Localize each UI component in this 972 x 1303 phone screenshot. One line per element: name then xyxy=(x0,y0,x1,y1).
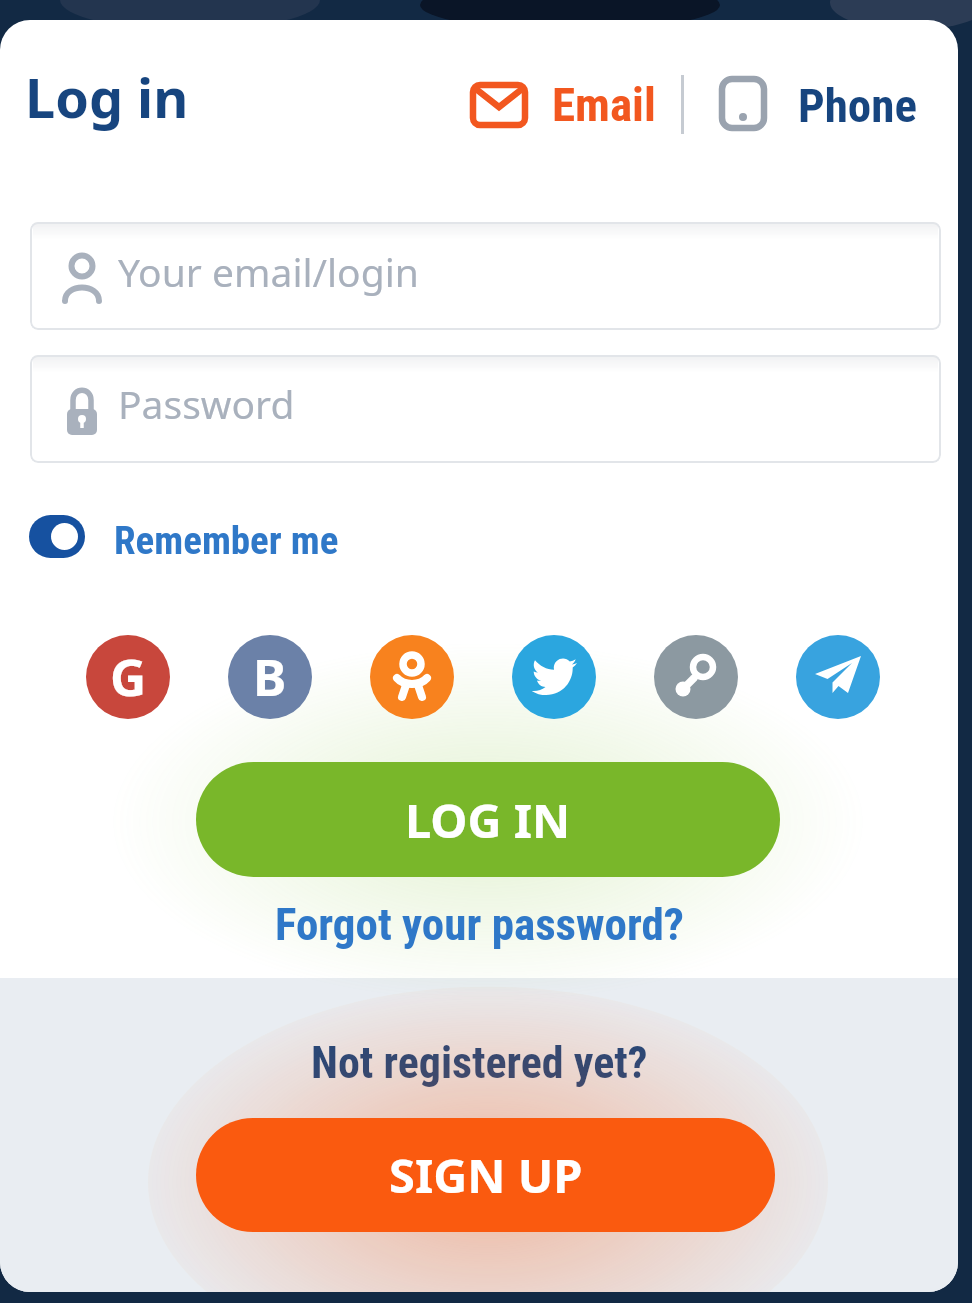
button[interactable] xyxy=(370,635,454,719)
button[interactable] xyxy=(30,355,941,463)
button[interactable] xyxy=(20,505,440,571)
staticText: LOG IN xyxy=(405,788,571,852)
staticText: SIGN UP xyxy=(389,1143,583,1207)
staticText: Phone xyxy=(798,78,917,133)
button[interactable] xyxy=(30,222,941,330)
staticText: Remember me xyxy=(114,518,339,564)
staticText: Not registered yet? xyxy=(311,1037,648,1089)
button[interactable] xyxy=(512,635,596,719)
button[interactable] xyxy=(710,70,920,138)
button[interactable] xyxy=(796,635,880,719)
staticText: G xyxy=(110,643,147,711)
button[interactable] xyxy=(654,635,738,719)
button[interactable]: LOG IN xyxy=(196,762,780,877)
button[interactable]: SIGN UP xyxy=(196,1118,775,1232)
button[interactable]: G xyxy=(86,635,170,719)
staticText: B xyxy=(253,643,287,711)
button[interactable] xyxy=(462,75,662,137)
staticText: Log in xyxy=(25,60,189,134)
staticText: Password xyxy=(118,377,295,430)
button[interactable]: B xyxy=(228,635,312,719)
staticText: Email xyxy=(552,77,656,132)
button[interactable]: Forgot your password? xyxy=(275,898,684,951)
staticText: Your email/login xyxy=(118,245,419,298)
